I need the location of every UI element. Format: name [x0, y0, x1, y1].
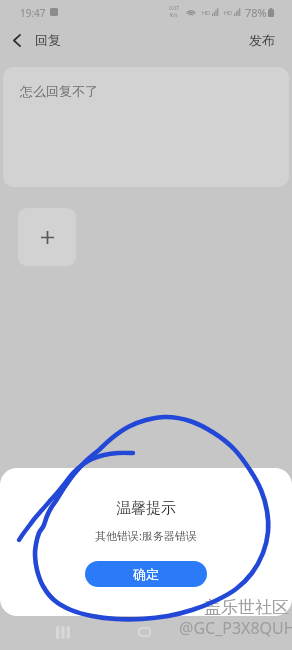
staticText: 0.07	[169, 5, 179, 12]
button[interactable]: 确定	[85, 561, 207, 587]
button[interactable]: 发布	[235, 24, 292, 56]
staticText: 温馨提示	[116, 499, 176, 518]
button[interactable]: 怎么回复不了	[3, 67, 289, 187]
staticText: 怎么回复不了	[20, 83, 98, 99]
staticText: K/s	[170, 12, 178, 19]
staticText: 78%	[245, 5, 267, 20]
button[interactable]: Home	[125, 617, 163, 647]
staticText: 19:47	[20, 6, 46, 20]
staticText: HD	[224, 9, 233, 16]
button[interactable]: 回复	[0, 24, 71, 56]
staticText: 发布	[249, 32, 275, 48]
staticText: 盖乐世社区	[204, 597, 289, 618]
button[interactable]: Recent apps	[44, 617, 82, 647]
staticText: 其他错误:服务器错误	[95, 528, 197, 543]
staticText: @GC_P3X8QUH	[179, 617, 292, 639]
staticText: 回复	[35, 32, 61, 48]
staticText: 确定	[133, 566, 159, 582]
staticText: HD	[202, 9, 211, 16]
button[interactable]: Add image	[18, 208, 76, 266]
